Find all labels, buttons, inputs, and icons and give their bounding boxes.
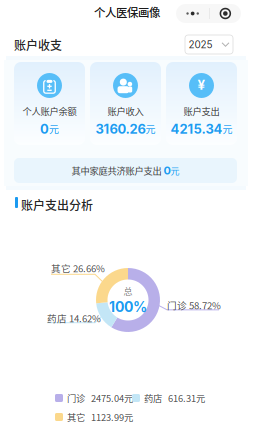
staticText: 药店 616.31元 — [140, 391, 205, 405]
staticText: 门诊 2475.04元 — [63, 391, 133, 405]
staticText: 4215.34 — [170, 121, 222, 137]
staticText: 100% — [109, 298, 147, 315]
staticText: 药店 14.62% — [47, 311, 101, 325]
staticText: 账户支出 — [183, 104, 219, 118]
button[interactable]: ¥ — [166, 62, 237, 145]
staticText: 账户收入 — [107, 104, 143, 118]
button[interactable]: 2025 — [185, 35, 233, 54]
staticText: 账户支出分析 — [21, 196, 93, 213]
staticText: 个人医保画像 — [94, 4, 160, 20]
staticText: ¥ — [197, 77, 205, 93]
staticText: 元 — [170, 164, 179, 177]
staticText: 门诊 58.72% — [167, 298, 221, 312]
staticText: 其它 1123.99元 — [63, 410, 133, 424]
staticText: 2025 — [188, 38, 212, 51]
staticText: 账户收支 — [14, 36, 62, 53]
staticText: 其它 26.66% — [51, 261, 105, 275]
button[interactable]: 个人账户余额 — [14, 62, 85, 145]
staticText: 0 — [163, 164, 170, 177]
button[interactable]: 账户收入 — [90, 62, 161, 145]
staticText: 3160.26 — [95, 121, 145, 137]
button[interactable]: Close mini program — [210, 4, 241, 23]
staticText: 0 — [40, 121, 49, 137]
staticText: 元 — [49, 122, 59, 136]
staticText: 其中家庭共济账户支出 — [71, 164, 163, 177]
button[interactable]: More — [176, 4, 209, 23]
staticText: 总 — [123, 284, 132, 297]
staticText: 元 — [145, 122, 155, 136]
staticText: 个人账户余额 — [22, 104, 76, 118]
staticText: 元 — [222, 122, 232, 136]
